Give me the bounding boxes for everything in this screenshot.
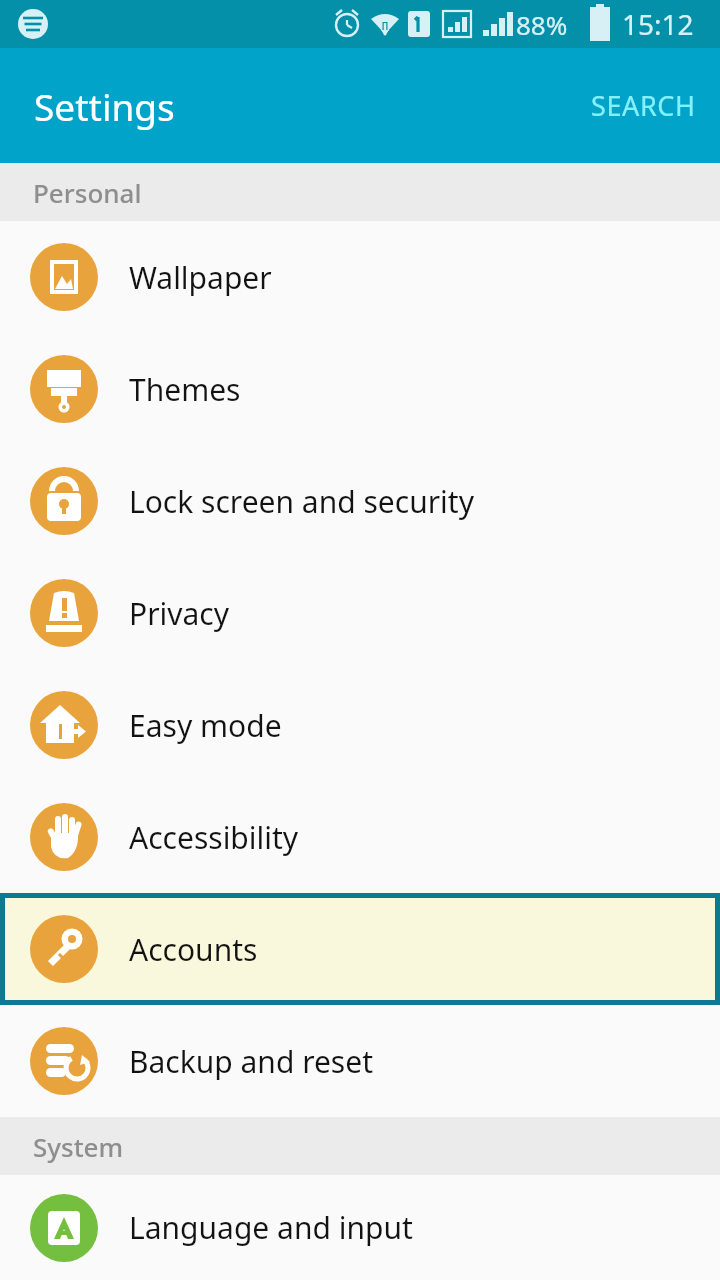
button[interactable]: Privacy <box>0 557 720 669</box>
staticText: 15:12 <box>622 5 694 43</box>
staticText: 88% <box>516 7 568 42</box>
button[interactable]: Lock screen and security <box>0 445 720 557</box>
button[interactable]: Language and input <box>0 1175 720 1280</box>
button[interactable]: Easy mode <box>0 669 720 781</box>
button[interactable]: Themes <box>0 333 720 445</box>
staticText: Wallpaper <box>129 257 272 298</box>
staticText: Language and input <box>129 1207 413 1248</box>
staticText: Lock screen and security <box>129 481 474 522</box>
staticText: System <box>33 1129 124 1164</box>
staticText: Privacy <box>129 593 230 634</box>
button[interactable]: Accounts <box>0 893 720 1005</box>
button[interactable]: Wallpaper <box>0 221 720 333</box>
staticText: Themes <box>129 369 241 410</box>
staticText: Backup and reset <box>129 1041 373 1082</box>
button[interactable]: Backup and reset <box>0 1005 720 1117</box>
staticText: Settings <box>34 81 175 131</box>
staticText: Accounts <box>129 929 258 970</box>
staticText: Easy mode <box>129 705 282 746</box>
staticText: Personal <box>33 175 142 210</box>
button[interactable]: Accessibility <box>0 781 720 893</box>
button[interactable]: SEARCH <box>567 69 720 142</box>
staticText: SEARCH <box>591 87 696 124</box>
staticText: Accessibility <box>129 817 299 858</box>
